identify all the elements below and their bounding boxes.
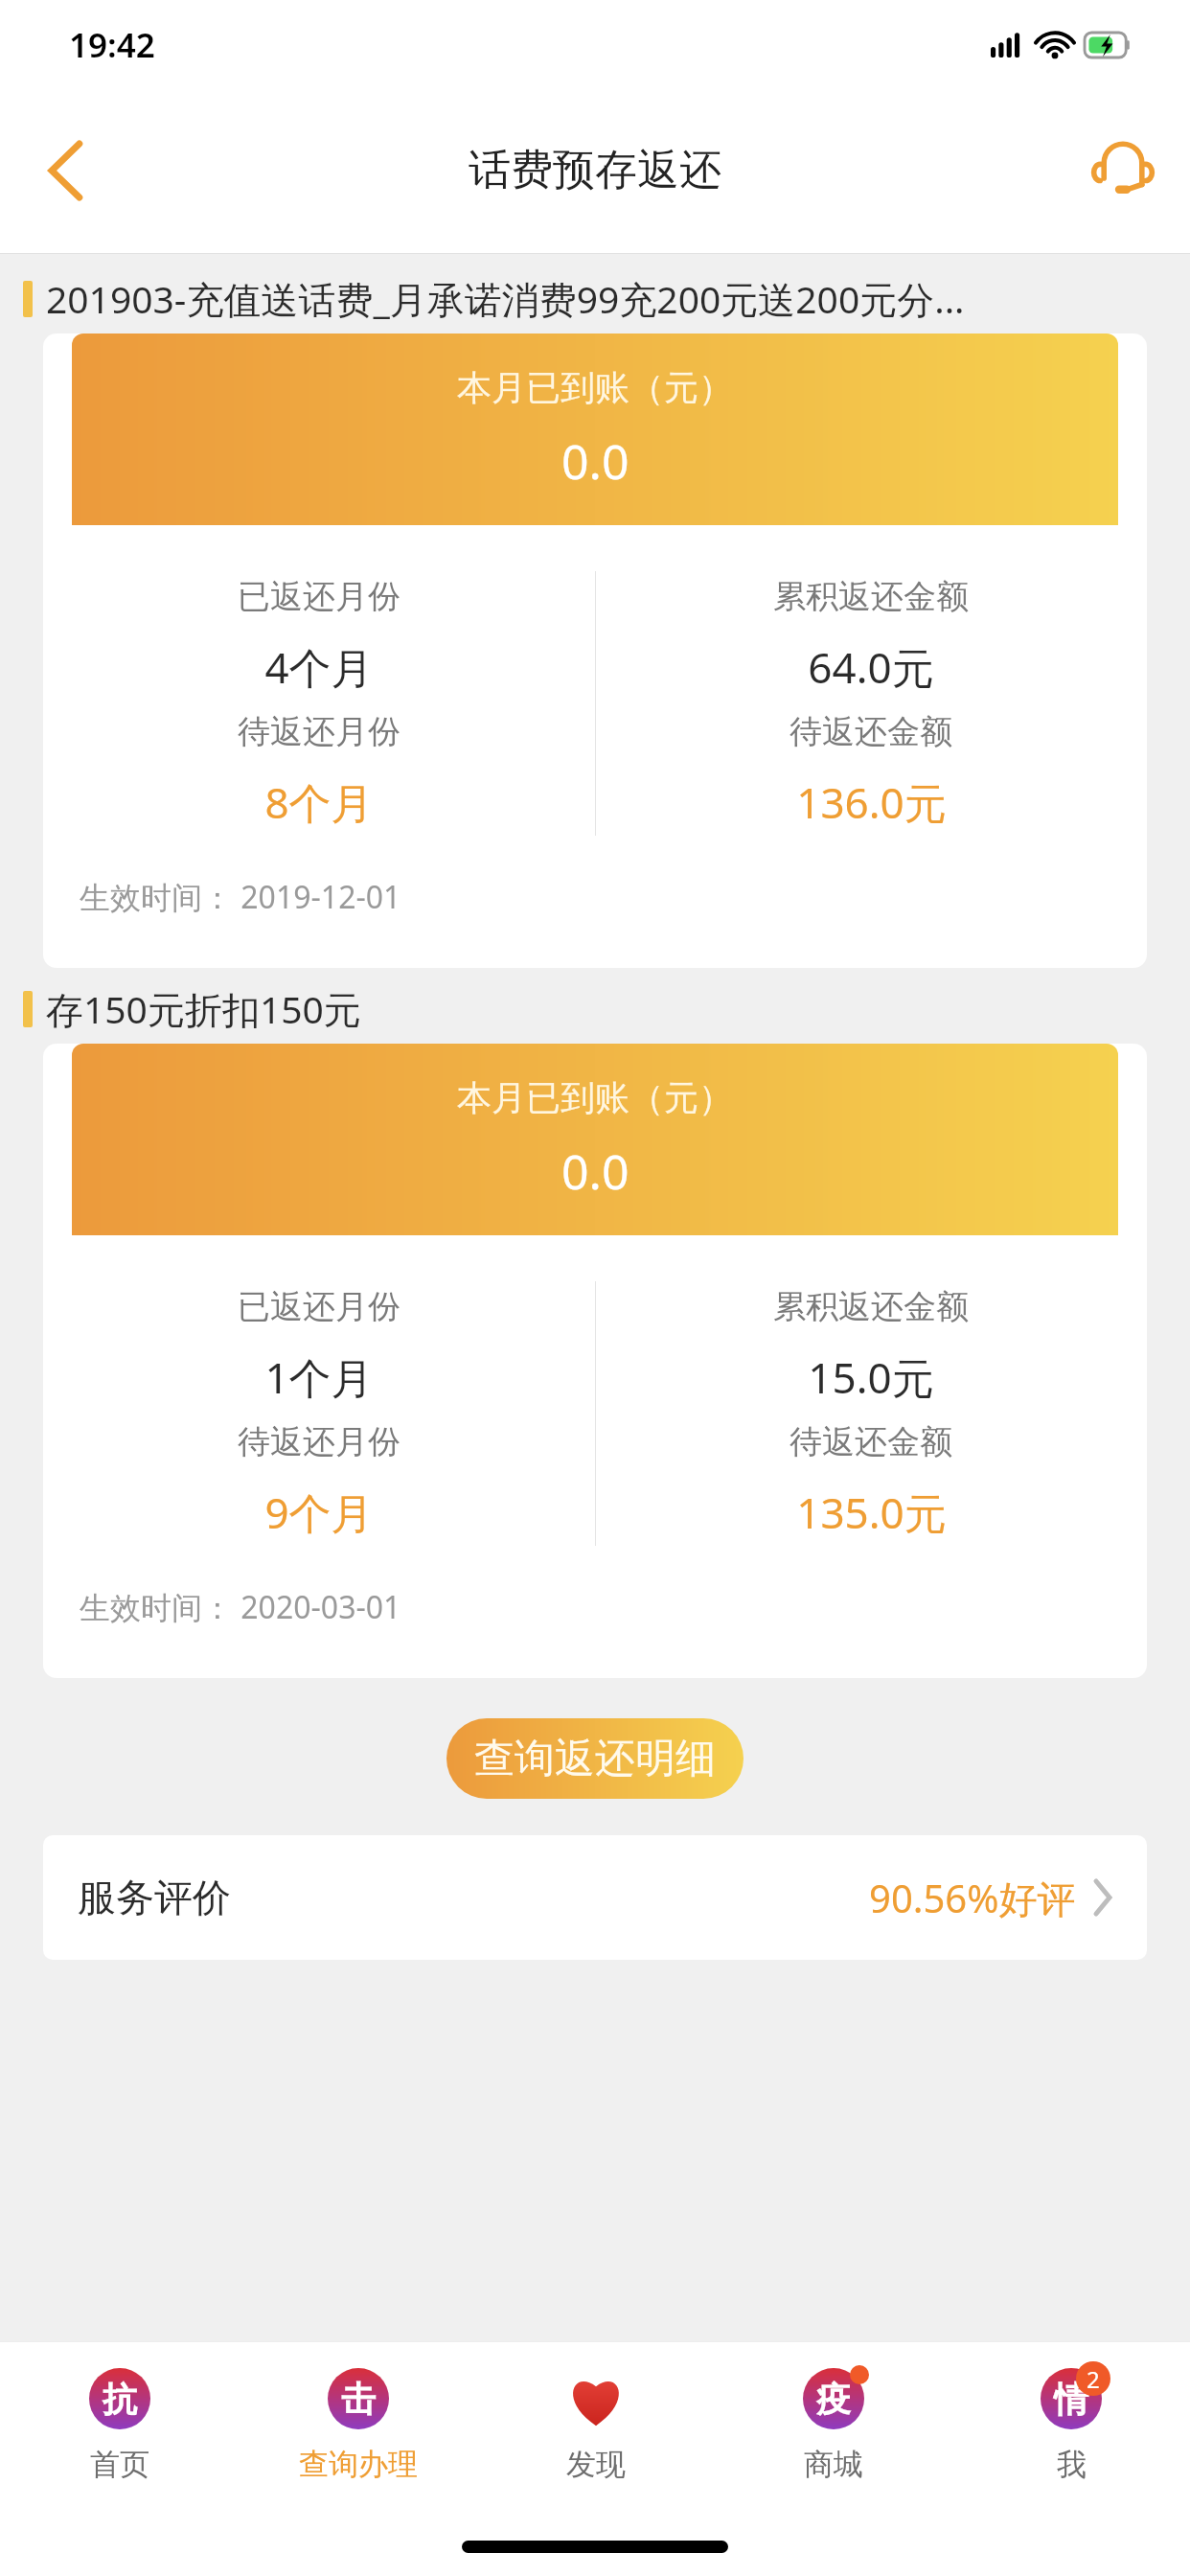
- staticText: 存150元折扣150元: [46, 983, 361, 1034]
- staticText: 首页: [90, 2446, 149, 2483]
- button[interactable]: 疫: [715, 2342, 952, 2501]
- staticText: 135.0元: [796, 1483, 947, 1541]
- staticText: 待返还月份: [238, 711, 400, 752]
- staticText: 累积返还金额: [773, 576, 969, 617]
- staticText: 击: [341, 2378, 376, 2421]
- staticText: 查询办理: [299, 2446, 418, 2483]
- staticText: 0.0: [561, 428, 629, 494]
- staticText: 201903-充值送话费_月承诺消费99充200元送200元分...: [46, 273, 965, 324]
- staticText: 已返还月份: [238, 1286, 400, 1327]
- button[interactable]: 击: [239, 2342, 477, 2501]
- staticText: 8个月: [264, 773, 374, 831]
- button[interactable]: 情: [952, 2342, 1190, 2501]
- staticText: 话费预存返还: [469, 144, 721, 196]
- staticText: 累积返还金额: [773, 1286, 969, 1327]
- button[interactable]: 发现: [477, 2342, 715, 2501]
- button[interactable]: 抗: [0, 2342, 239, 2501]
- staticText: 已返还月份: [238, 576, 400, 617]
- staticText: 4个月: [264, 638, 374, 696]
- staticText: 生效时间： 2019-12-01: [80, 876, 401, 918]
- staticText: 待返还金额: [790, 711, 952, 752]
- staticText: 90.56%好评: [869, 1872, 1076, 1924]
- staticText: 136.0元: [796, 773, 947, 831]
- staticText: 9个月: [264, 1483, 374, 1541]
- button[interactable]: 本月已到账（元）: [43, 1044, 1147, 1678]
- button[interactable]: Customer service: [1077, 125, 1169, 217]
- staticText: 生效时间： 2020-03-01: [80, 1586, 401, 1628]
- button[interactable]: 查询返还明细: [446, 1718, 744, 1799]
- staticText: 我: [1057, 2446, 1087, 2483]
- button[interactable]: Back: [21, 125, 113, 217]
- staticText: 待返还金额: [790, 1421, 952, 1462]
- staticText: 15.0元: [808, 1348, 934, 1406]
- staticText: 2: [1087, 2363, 1100, 2395]
- staticText: 情: [1054, 2378, 1088, 2421]
- staticText: 19:42: [69, 22, 155, 68]
- staticText: 查询返还明细: [474, 1734, 716, 1784]
- staticText: 疫: [816, 2378, 851, 2421]
- staticText: 发现: [566, 2446, 626, 2483]
- staticText: 服务评价: [78, 1874, 231, 1921]
- staticText: 商城: [804, 2446, 863, 2483]
- button[interactable]: 本月已到账（元）: [43, 333, 1147, 968]
- staticText: 0.0: [561, 1138, 629, 1204]
- button[interactable]: 服务评价: [43, 1835, 1147, 1960]
- staticText: 抗: [103, 2378, 137, 2421]
- staticText: 本月已到账（元）: [457, 1076, 733, 1119]
- staticText: 待返还月份: [238, 1421, 400, 1462]
- staticText: 64.0元: [808, 638, 934, 696]
- staticText: 本月已到账（元）: [457, 366, 733, 409]
- staticText: 1个月: [264, 1348, 374, 1406]
